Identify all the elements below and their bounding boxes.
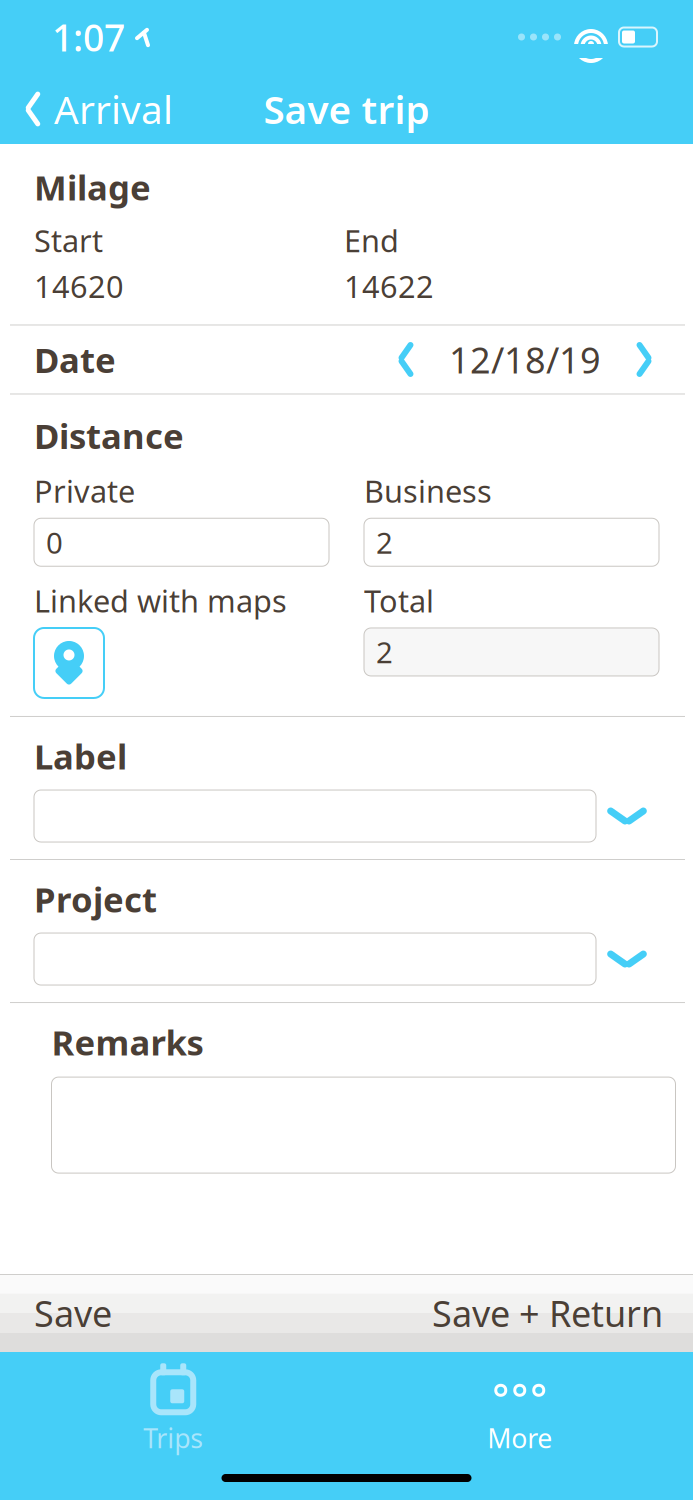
button[interactable]: Previous day — [377, 334, 435, 384]
staticText: Save + Return — [432, 1289, 663, 1337]
staticText: Arrival — [54, 83, 173, 135]
button[interactable]: Save — [0, 1271, 146, 1355]
staticText: 2 — [376, 523, 393, 562]
button[interactable]: Choose Label — [596, 789, 658, 843]
button[interactable]: Trips — [93, 1358, 253, 1462]
button[interactable]: More — [440, 1358, 600, 1462]
staticText: Linked with maps — [34, 580, 287, 621]
staticText: Label — [34, 733, 127, 779]
staticText: Private — [34, 470, 135, 511]
staticText: Distance — [34, 412, 184, 458]
staticText: End — [344, 220, 399, 261]
staticText: Save trip — [263, 83, 429, 135]
staticText: Milage — [34, 164, 151, 210]
staticText: 0 — [46, 523, 63, 562]
staticText: 12/18/19 — [449, 336, 601, 383]
button[interactable]: Save + Return — [402, 1271, 693, 1355]
button[interactable]: Arrival — [0, 77, 173, 141]
staticText: Trips — [143, 1420, 203, 1456]
staticText: 2 — [376, 632, 393, 671]
button[interactable]: Next day — [615, 334, 673, 384]
staticText: 14622 — [344, 266, 434, 306]
button[interactable]: Choose Project — [596, 932, 658, 986]
staticText: Total — [364, 580, 434, 621]
staticText: Date — [34, 336, 116, 382]
button[interactable]: Linked with maps — [34, 628, 104, 698]
staticText: Start — [34, 220, 103, 261]
staticText: Remarks — [51, 1019, 203, 1065]
staticText: More — [487, 1420, 552, 1456]
staticText: Business — [364, 470, 492, 511]
staticText: Save — [34, 1289, 112, 1337]
staticText: Project — [34, 876, 157, 922]
staticText: 14620 — [34, 266, 124, 306]
staticText: 1:07 — [52, 12, 125, 62]
